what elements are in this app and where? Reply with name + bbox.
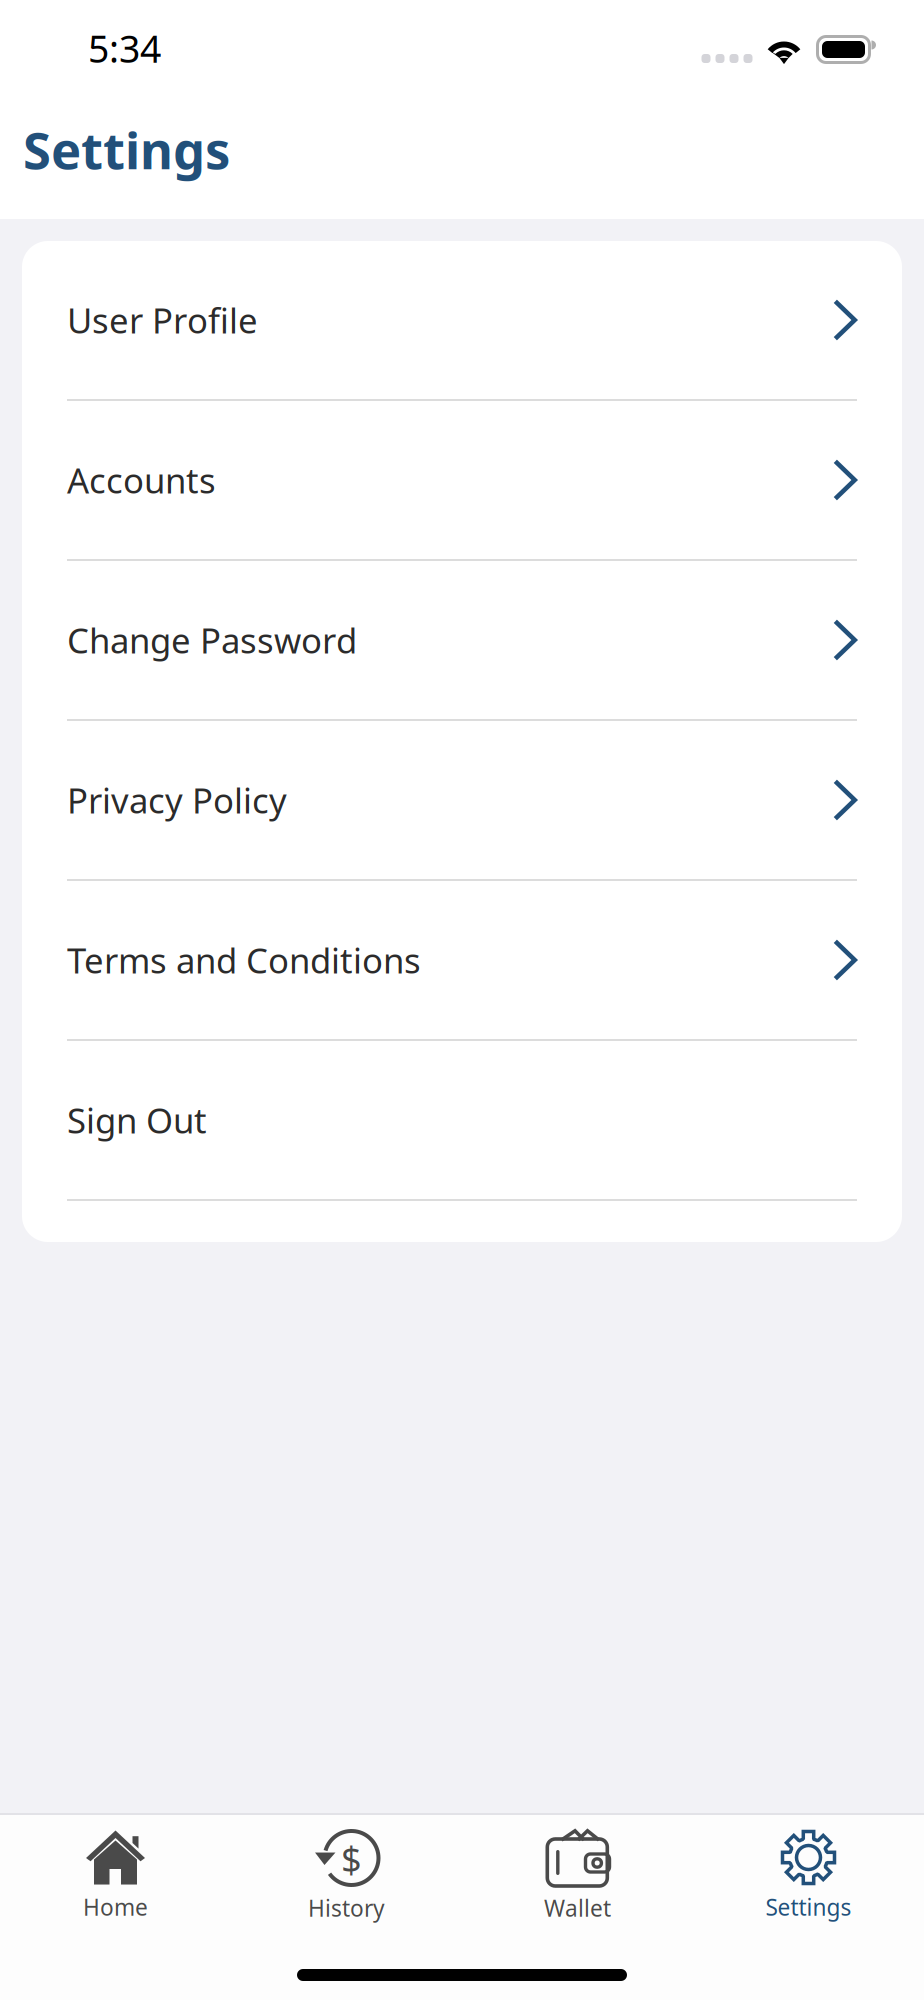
staticText: Change Password xyxy=(67,617,357,663)
staticText: Privacy Policy xyxy=(67,777,287,823)
staticText: 5:34 xyxy=(88,23,161,73)
button[interactable]: Settings xyxy=(693,1830,924,1922)
staticText: Wallet xyxy=(544,1893,611,1923)
staticText: User Profile xyxy=(67,297,258,343)
button[interactable]: Accounts xyxy=(22,401,902,559)
button[interactable]: User Profile xyxy=(22,241,902,399)
staticText: Terms and Conditions xyxy=(67,937,421,983)
staticText: Accounts xyxy=(67,457,216,503)
staticText: Settings xyxy=(765,1892,851,1922)
button[interactable]: $ xyxy=(231,1829,462,1923)
button[interactable]: Home xyxy=(0,1830,231,1922)
staticText: $ xyxy=(341,1835,362,1882)
staticText: History xyxy=(308,1893,385,1923)
button[interactable]: Privacy Policy xyxy=(22,721,902,879)
button[interactable]: Change Password xyxy=(22,561,902,719)
button[interactable]: Wallet xyxy=(462,1829,693,1923)
staticText: Sign Out xyxy=(67,1097,207,1143)
staticText: Home xyxy=(83,1892,148,1922)
button[interactable]: Sign Out xyxy=(22,1041,902,1199)
button[interactable]: Terms and Conditions xyxy=(22,881,902,1039)
staticText: Settings xyxy=(23,116,230,183)
